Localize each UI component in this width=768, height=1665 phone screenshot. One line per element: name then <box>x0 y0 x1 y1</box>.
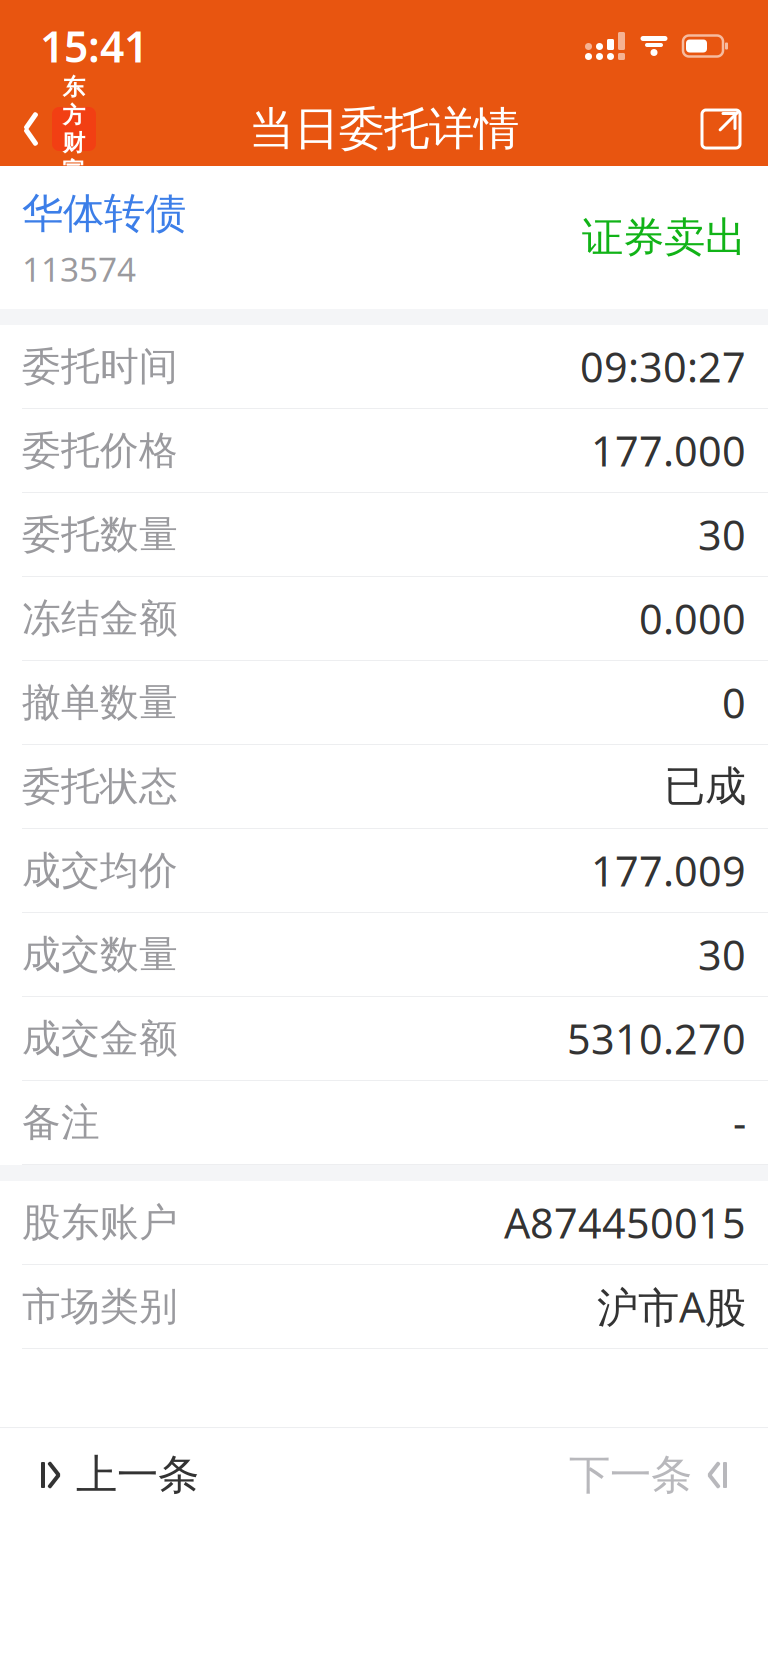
staticText: 下一条 <box>569 1450 692 1500</box>
staticText: 财富 <box>62 129 85 185</box>
staticText: 177.009 <box>591 843 746 898</box>
button[interactable]: 下一条 <box>569 1430 768 1520</box>
staticText: 177.000 <box>591 423 746 478</box>
staticText: 30 <box>698 507 746 562</box>
staticText: 委托价格 <box>22 427 178 474</box>
staticText: 0 <box>722 675 746 730</box>
staticText: 证券卖出 <box>582 212 746 263</box>
staticText: 备注 <box>22 1099 100 1146</box>
staticText: 成交数量 <box>22 931 178 978</box>
staticText: 委托状态 <box>22 763 178 810</box>
staticText: 15:41 <box>40 18 148 74</box>
staticText: - <box>733 1095 746 1150</box>
staticText: 上一条 <box>76 1450 199 1500</box>
staticText: A874450015 <box>504 1195 746 1250</box>
staticText: 冻结金额 <box>22 595 178 642</box>
button[interactable]: 上一条 <box>0 1430 199 1520</box>
staticText: 09:30:27 <box>580 339 746 394</box>
staticText: 5310.270 <box>567 1011 746 1066</box>
staticText: 0.000 <box>639 591 746 646</box>
staticText: 成交金额 <box>22 1015 178 1062</box>
button[interactable]: 返回 东方财富 <box>0 99 96 159</box>
staticText: 已成 <box>664 761 746 812</box>
staticText: 撤单数量 <box>22 679 178 726</box>
staticText: 东方 <box>62 73 85 129</box>
staticText: 成交均价 <box>22 847 178 894</box>
staticText: 委托时间 <box>22 343 178 390</box>
staticText: 委托数量 <box>22 511 178 558</box>
staticText: 沪市A股 <box>597 1279 746 1334</box>
staticText: 华体转债 <box>22 188 186 239</box>
staticText: 股东账户 <box>22 1199 178 1246</box>
staticText: 当日委托详情 <box>249 101 519 157</box>
staticText: 市场类别 <box>22 1283 178 1330</box>
button[interactable]: 分享 <box>696 98 768 160</box>
staticText: 113574 <box>22 247 136 291</box>
staticText: 30 <box>698 927 746 982</box>
